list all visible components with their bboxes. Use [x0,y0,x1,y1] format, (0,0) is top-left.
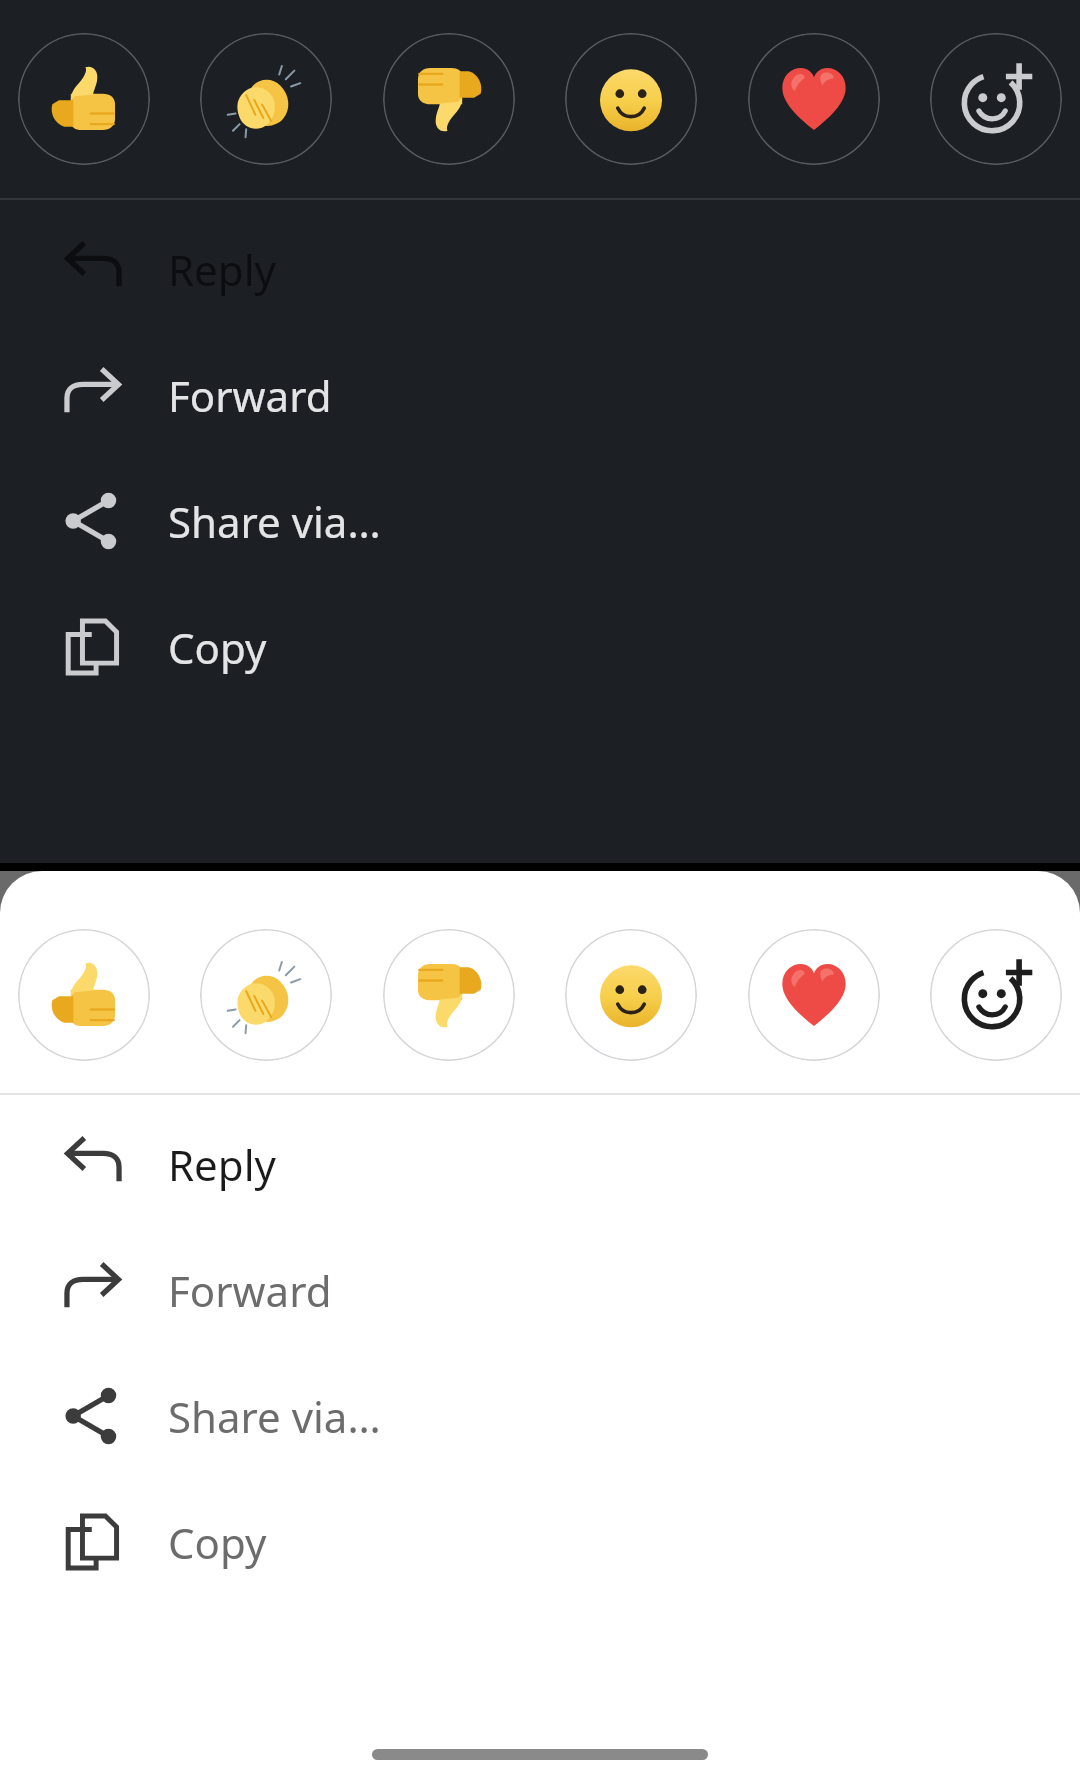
staticText: Copy [168,619,267,676]
button[interactable]: Clap reaction [200,929,332,1061]
button[interactable]: Smile reaction [565,33,697,165]
button[interactable]: Share via… [0,1353,1080,1479]
staticText: Share via… [168,1388,381,1445]
button[interactable]: Forward [0,1227,1080,1353]
button[interactable]: Forward [0,332,1080,458]
button[interactable]: Clap reaction [200,33,332,165]
button[interactable]: Thumbs down reaction [383,33,515,165]
button[interactable]: More reactions [930,929,1062,1061]
button[interactable]: Thumbs up reaction [18,929,150,1061]
button[interactable]: Heart reaction [748,33,880,165]
staticText: Forward [168,1262,332,1319]
button[interactable]: Copy [0,584,1080,710]
staticText: Forward [168,367,332,424]
button[interactable]: Reply [0,1101,1080,1227]
button[interactable]: Copy [0,1479,1080,1605]
button[interactable]: Thumbs up reaction [18,33,150,165]
button[interactable]: Thumbs down reaction [383,929,515,1061]
button[interactable]: Smile reaction [565,929,697,1061]
staticText: Reply [168,241,276,298]
staticText: Reply [168,1136,276,1193]
button[interactable]: More reactions [930,33,1062,165]
button[interactable]: Heart reaction [748,929,880,1061]
staticText: Copy [168,1514,267,1571]
staticText: Share via… [168,493,381,550]
button[interactable]: Share via… [0,458,1080,584]
